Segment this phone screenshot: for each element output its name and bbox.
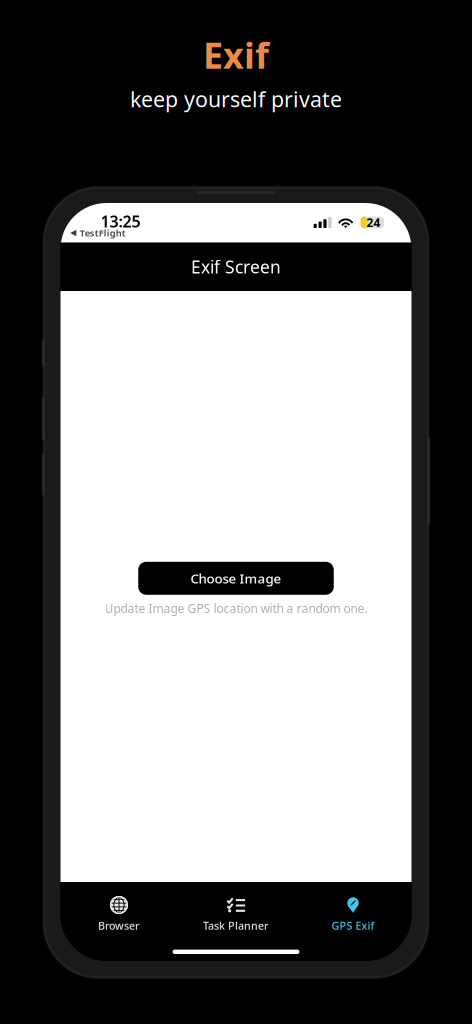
- staticText: Choose Image: [190, 569, 281, 587]
- staticText: Task Planner: [203, 918, 269, 933]
- staticText: keep yourself private: [130, 85, 342, 113]
- staticText: Exif: [203, 31, 269, 79]
- staticText: Browser: [98, 918, 140, 933]
- button[interactable]: GPS Exif: [294, 895, 411, 933]
- staticText: TestFlight: [80, 227, 126, 239]
- button[interactable]: Choose Image: [138, 562, 334, 595]
- button[interactable]: Browser: [60, 895, 177, 933]
- button[interactable]: Task Planner: [177, 895, 294, 933]
- staticText: 13:25: [100, 211, 140, 232]
- staticText: GPS Exif: [331, 918, 374, 933]
- staticText: Exif Screen: [191, 255, 281, 278]
- staticText: Update Image GPS location with a random …: [104, 600, 367, 616]
- staticText: 24: [366, 214, 380, 230]
